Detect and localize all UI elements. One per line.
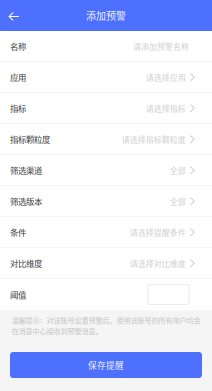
staticText: 筛选渠道 [10, 164, 42, 176]
staticText: 请选择提醒条件 [130, 226, 186, 238]
staticText: 条件 [10, 226, 26, 238]
button[interactable]: 对比维度 [0, 248, 212, 278]
staticText: 名称 [10, 40, 26, 52]
staticText: 请选择指标 [146, 102, 186, 114]
button[interactable]: 保存提醒 [10, 352, 202, 378]
staticText: 指标颗粒度 [10, 133, 50, 145]
staticText: 温馨提示：对该账号设置预警后，使用该账号的所有用户均会在消息中心接收到预警消息。 [11, 315, 200, 336]
button[interactable]: 应用 [0, 62, 212, 92]
button[interactable]: 筛选渠道 [0, 155, 212, 185]
staticText: 阈值 [10, 288, 26, 301]
button[interactable]: 指标 [0, 93, 212, 123]
staticText: 请选择指标颗粒度 [122, 133, 186, 145]
staticText: 添加预警 [86, 8, 126, 23]
staticText: 指标 [10, 102, 26, 114]
staticText: 请选择应用 [146, 71, 186, 83]
button[interactable]: 筛选版本 [0, 186, 212, 216]
staticText: 对比维度 [10, 257, 42, 269]
staticText: 筛选版本 [10, 195, 42, 207]
staticText: 应用 [10, 71, 26, 83]
staticText: 全部 [170, 195, 186, 207]
button[interactable]: 名称 [0, 31, 212, 61]
staticText: 请添加预警名称 [133, 40, 189, 52]
staticText: 全部 [170, 164, 186, 176]
button[interactable]: 条件 [0, 217, 212, 247]
button[interactable]: Back [4, 0, 24, 31]
button[interactable]: 指标颗粒度 [0, 124, 212, 154]
staticText: 保存提醒 [88, 359, 124, 371]
staticText: 请选择对比维度 [130, 257, 186, 269]
